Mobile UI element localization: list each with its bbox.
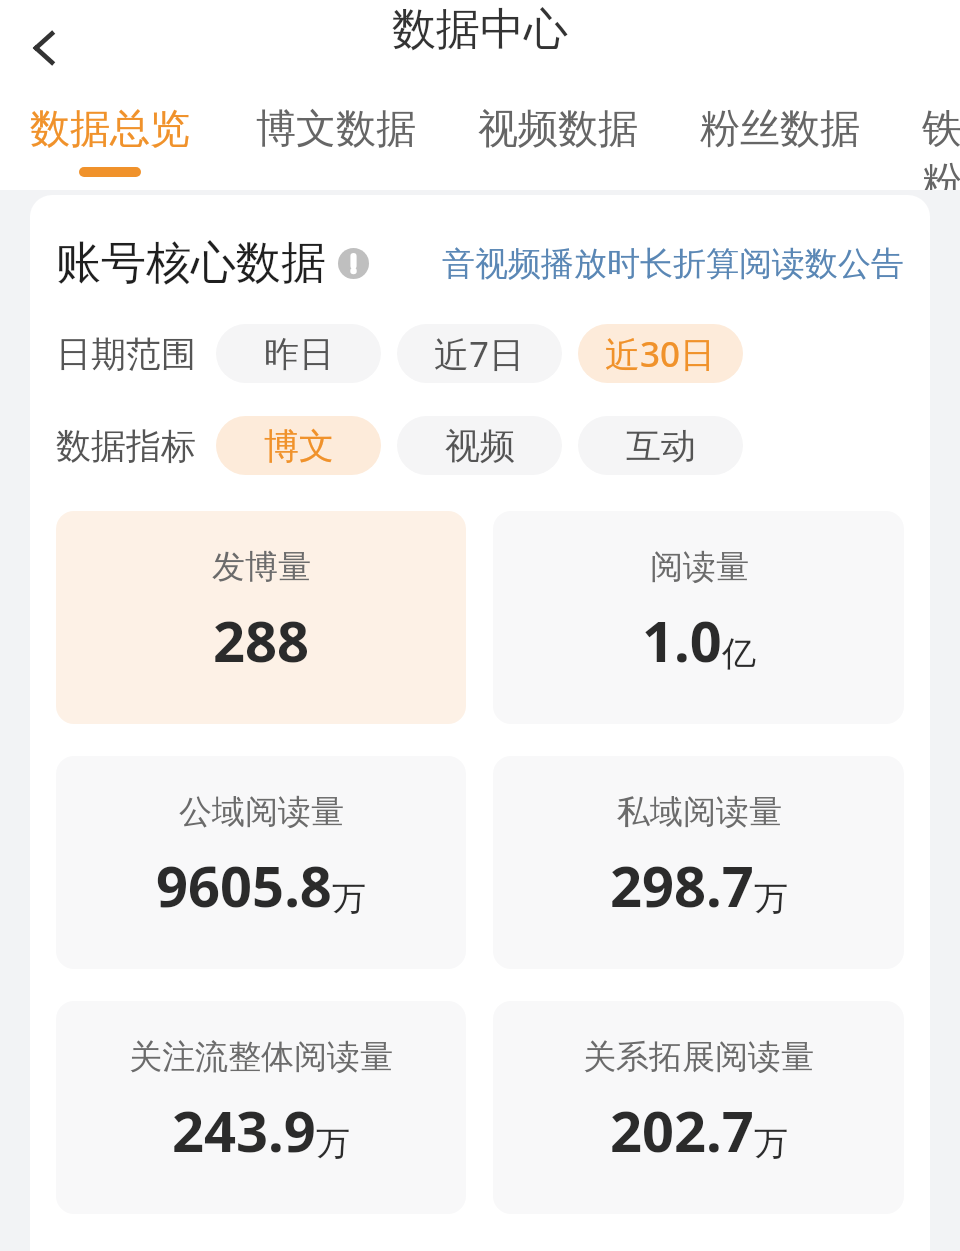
button[interactable]: 近30日 — [578, 324, 743, 383]
button[interactable]: Back — [8, 12, 80, 84]
staticText: 关注流整体阅读量 — [129, 1036, 393, 1078]
staticText: 阅读量 — [650, 546, 749, 588]
button[interactable]: 昨日 — [216, 324, 381, 383]
button[interactable]: 音视频播放时长折算阅读数公告 — [442, 243, 904, 285]
button[interactable]: 博文数据 — [256, 95, 416, 167]
staticText: 288 — [213, 602, 310, 678]
staticText: 公域阅读量 — [179, 791, 344, 833]
staticText: 亿 — [722, 632, 756, 675]
button[interactable]: 公域阅读量 — [56, 756, 466, 969]
button[interactable]: 铁粉数据 — [922, 95, 960, 190]
staticText: 近30日 — [605, 330, 716, 378]
staticText: 视频数据 — [478, 103, 638, 153]
staticText: 博文 — [264, 424, 334, 468]
staticText: 关系拓展阅读量 — [583, 1036, 814, 1078]
staticText: 万 — [332, 877, 366, 920]
staticText: 铁粉数据 — [922, 103, 960, 190]
staticText: 互动 — [626, 424, 696, 468]
button[interactable]: 视频数据 — [478, 95, 638, 167]
button[interactable]: 粉丝数据 — [700, 95, 860, 167]
staticText: 202.7 — [610, 1092, 754, 1168]
button[interactable]: 阅读量 — [493, 511, 904, 724]
staticText: 账号核心数据 — [56, 235, 326, 292]
staticText: 万 — [754, 1122, 788, 1165]
staticText: 发博量 — [212, 546, 311, 588]
button[interactable]: 博文 — [216, 416, 381, 475]
staticText: 万 — [754, 877, 788, 920]
staticText: 数据指标 — [56, 424, 196, 468]
staticText: 粉丝数据 — [700, 103, 860, 153]
staticText: 万 — [316, 1122, 350, 1165]
staticText: 9605.8 — [156, 847, 332, 923]
staticText: 音视频播放时长折算阅读数公告 — [442, 243, 904, 285]
button[interactable]: 发博量 — [56, 511, 466, 724]
staticText: 昨日 — [264, 332, 334, 376]
staticText: 1.0 — [642, 602, 722, 678]
staticText: 近7日 — [434, 330, 525, 378]
staticText: 数据中心 — [392, 2, 568, 57]
button[interactable]: Info — [338, 248, 369, 279]
staticText: 博文数据 — [256, 103, 416, 153]
staticText: 数据总览 — [30, 103, 190, 153]
button[interactable]: 数据总览 — [30, 95, 190, 177]
staticText: 私域阅读量 — [617, 791, 782, 833]
button[interactable]: 私域阅读量 — [493, 756, 904, 969]
button[interactable]: 关注流整体阅读量 — [56, 1001, 466, 1214]
staticText: 298.7 — [610, 847, 754, 923]
button[interactable]: 互动 — [578, 416, 743, 475]
button[interactable]: 关系拓展阅读量 — [493, 1001, 904, 1214]
button[interactable]: 近7日 — [397, 324, 562, 383]
staticText: 视频 — [445, 424, 515, 468]
staticText: 日期范围 — [56, 332, 196, 376]
button[interactable]: 视频 — [397, 416, 562, 475]
staticText: 243.9 — [172, 1092, 316, 1168]
